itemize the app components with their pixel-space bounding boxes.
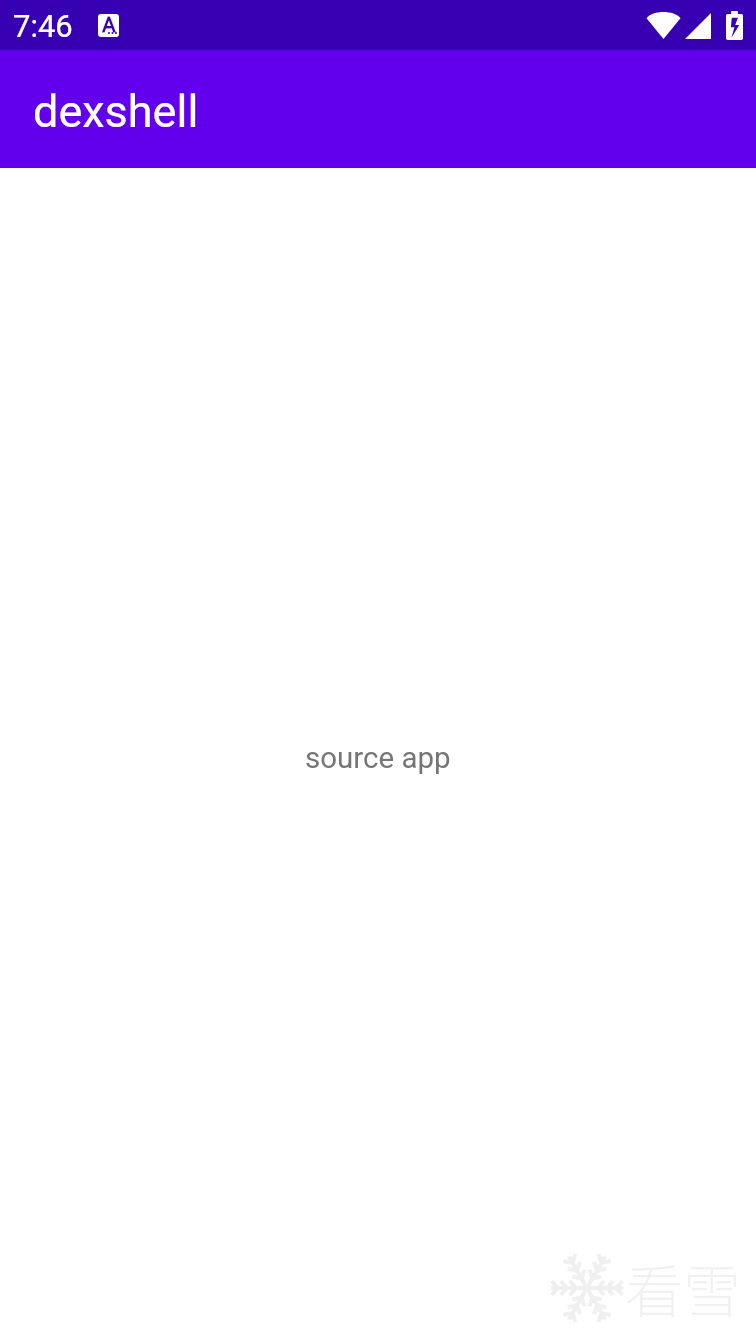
staticText: dexshell <box>33 85 199 138</box>
button[interactable]: Battery charging <box>726 11 743 40</box>
button[interactable]: dexshell <box>0 50 756 168</box>
staticText: 看雪 <box>625 1246 742 1330</box>
staticText: source app <box>305 741 451 776</box>
button[interactable]: Wi-Fi <box>646 12 681 39</box>
staticText: A <box>102 14 116 36</box>
staticText: 7:46 <box>13 8 73 44</box>
button[interactable]: Mobile signal <box>685 13 711 39</box>
button[interactable]: Input method <box>98 14 119 37</box>
